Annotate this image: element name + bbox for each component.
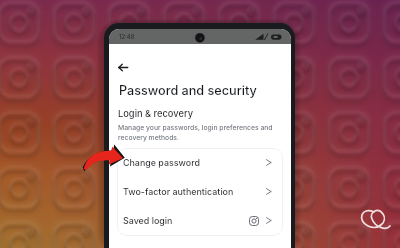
staticText: recovery methods.: [118, 133, 180, 141]
button[interactable]: Two-factor authentication: [117, 177, 283, 206]
button[interactable]: Saved login: [117, 206, 283, 235]
staticText: Saved login: [123, 215, 173, 226]
button[interactable]: Change password: [117, 148, 283, 177]
button[interactable]: Back: [114, 58, 132, 76]
staticText: 12:48: [119, 33, 135, 40]
staticText: Manage your passwords, login preferences…: [118, 123, 273, 131]
staticText: Two-factor authentication: [123, 186, 234, 197]
staticText: Password and security: [119, 83, 257, 98]
staticText: Login & recovery: [118, 108, 193, 119]
staticText: Change password: [123, 157, 200, 168]
